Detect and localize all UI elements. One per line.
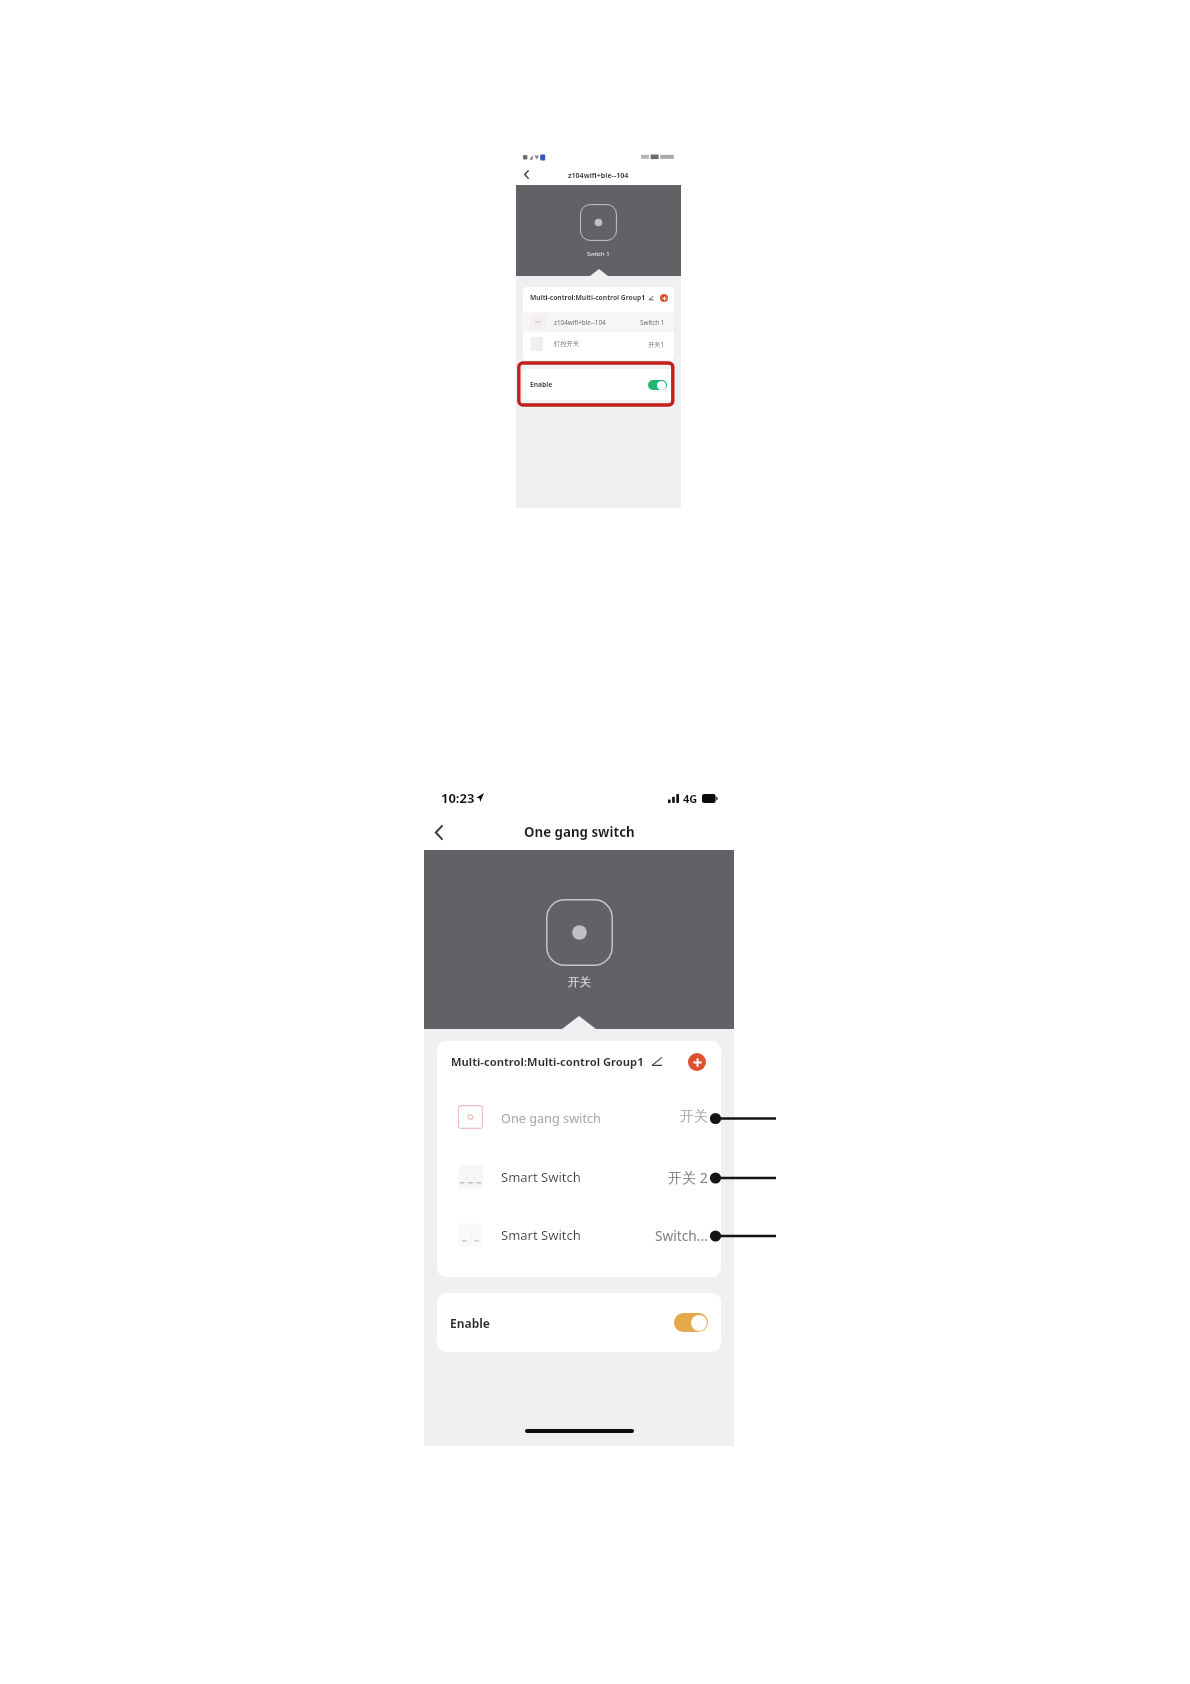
button[interactable]: Enable toggle: [674, 1313, 708, 1332]
staticText: One gang switch: [501, 1109, 601, 1126]
button[interactable]: Back: [426, 819, 452, 845]
button[interactable]: Enable toggle: [648, 380, 667, 390]
button[interactable]: Smart Switch: [458, 1214, 708, 1256]
staticText: Multi-control:Multi-control Group1: [530, 293, 646, 302]
staticText: 4G: [683, 791, 698, 806]
staticText: z104wifi+ble--104: [568, 170, 629, 180]
button[interactable]: Add: [688, 1053, 706, 1071]
staticText: Smart Switch: [501, 1226, 581, 1244]
staticText: 10:23: [441, 789, 475, 807]
staticText: z104wifi+ble--104: [554, 318, 606, 327]
staticText: 开关: [680, 1108, 708, 1126]
button[interactable]: Enable: [523, 369, 674, 400]
staticText: Smart Switch: [501, 1168, 581, 1186]
button[interactable]: Add: [660, 294, 668, 302]
button[interactable]: Smart Switch: [458, 1156, 708, 1198]
staticText: Switch...: [655, 1226, 708, 1245]
staticText: 灯控开关: [554, 340, 580, 348]
staticText: 开关: [568, 975, 591, 989]
staticText: Switch 1: [640, 318, 665, 327]
button[interactable]: Enable: [437, 1293, 721, 1352]
staticText: Multi-control:Multi-control Group1: [451, 1054, 644, 1069]
button[interactable]: 灯控开关: [530, 334, 665, 354]
button[interactable]: Edit group name: [451, 1054, 663, 1069]
staticText: One gang switch: [524, 823, 635, 841]
staticText: Enable: [450, 1315, 491, 1331]
button[interactable]: z104wifi+ble--104: [530, 312, 665, 332]
button[interactable]: Back: [519, 167, 533, 181]
staticText: Switch 1: [587, 250, 610, 258]
staticText: Enable: [530, 380, 553, 389]
staticText: 开关1: [648, 340, 665, 349]
button[interactable]: Multi-control:Multi-control Group1: [530, 287, 668, 308]
staticText: 开关 2: [668, 1168, 708, 1187]
button[interactable]: One gang switch: [458, 1096, 708, 1138]
